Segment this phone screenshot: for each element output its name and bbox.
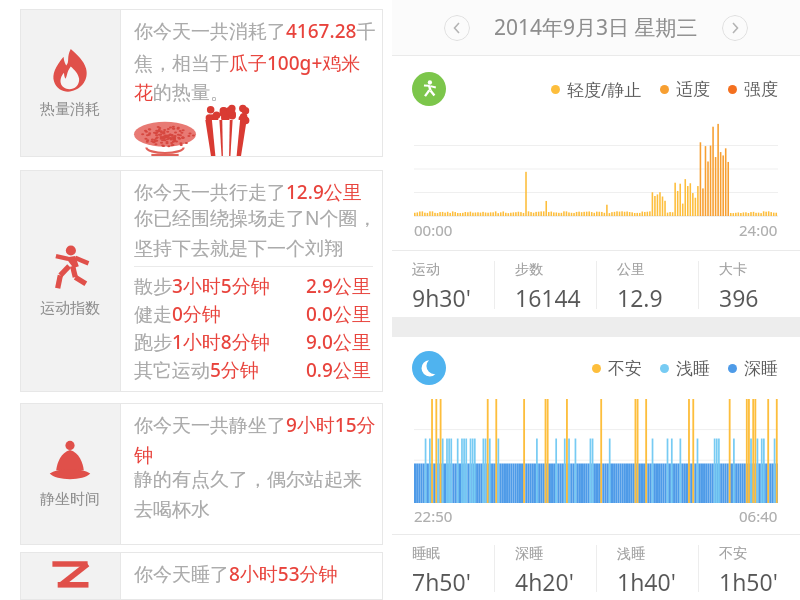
staticText: 其它运动5分钟 — [134, 357, 259, 383]
staticText: 0.9公里 — [306, 357, 371, 383]
staticText: 你已经围绕操场走了N个圈，坚持下去就是下一个刘翔 — [134, 205, 377, 260]
button[interactable]: 静坐时间 — [20, 403, 383, 545]
button[interactable]: 不安 — [719, 545, 800, 592]
staticText: 2.9公里 — [306, 273, 371, 299]
staticText: 公里 — [617, 261, 645, 279]
staticText: 适度 — [676, 79, 710, 100]
staticText: 16144 — [515, 282, 581, 309]
staticText: 散步3小时5分钟 — [134, 273, 270, 299]
staticText: 9.0公里 — [306, 329, 371, 355]
staticText: 浅睡 — [617, 545, 645, 563]
button[interactable]: 运动 — [412, 261, 494, 309]
staticText: 你今天一共静坐了9小时15分钟 — [134, 412, 377, 468]
button[interactable]: 热量消耗 — [20, 9, 383, 157]
staticText: 运动指数 — [40, 299, 100, 318]
button[interactable]: 浅睡 — [617, 545, 698, 592]
staticText: 大卡 — [719, 261, 747, 279]
staticText: 热量消耗 — [40, 100, 100, 119]
staticText: 运动 — [412, 261, 440, 279]
staticText: 不安 — [719, 545, 747, 563]
staticText: 你今天一共消耗了4167.28千焦，相当于瓜子100g+鸡米花的热量。 — [134, 18, 377, 105]
button[interactable]: 睡眠时间 — [20, 552, 383, 600]
staticText: 7h50' — [412, 566, 471, 592]
staticText: 步数 — [515, 261, 543, 279]
staticText: 健走0分钟 — [134, 301, 221, 327]
button[interactable]: 睡眠 — [412, 545, 494, 592]
staticText: 24:00 — [739, 220, 778, 240]
other: 运动指数 — [48, 245, 92, 291]
staticText: 4h20' — [515, 566, 574, 592]
staticText: 06:40 — [739, 506, 778, 526]
staticText: 浅睡 — [676, 358, 710, 379]
staticText: 深睡 — [515, 545, 543, 563]
staticText: 你今天睡了8小时53分钟 — [134, 561, 338, 587]
staticText: 12.9 — [617, 282, 663, 309]
staticText: 9h30' — [412, 282, 471, 309]
staticText: 2014年9月3日 星期三 — [494, 13, 698, 42]
staticText: 不安 — [608, 358, 642, 379]
staticText: 396 — [719, 282, 759, 309]
staticText: 1h40' — [617, 566, 676, 592]
staticText: 1h50' — [719, 566, 778, 592]
staticText: 静的有点久了，偶尔站起来去喝杯水 — [134, 468, 377, 522]
staticText: 静坐时间 — [40, 490, 100, 509]
button[interactable]: 下一天 — [722, 15, 748, 41]
button[interactable]: 大卡 — [719, 261, 800, 309]
staticText: 22:50 — [414, 506, 453, 526]
staticText: 轻度/静止 — [567, 78, 642, 101]
button[interactable]: 深睡 — [515, 545, 596, 592]
staticText: 强度 — [744, 79, 778, 100]
other: 静坐时间 — [47, 440, 93, 482]
staticText: 深睡 — [744, 358, 778, 379]
other: 热量消耗 — [51, 48, 89, 92]
button[interactable]: 前一天 — [444, 15, 470, 41]
other: 睡眠时间 — [48, 552, 92, 592]
staticText: 跑步1小时8分钟 — [134, 329, 270, 355]
staticText: 0.0公里 — [306, 301, 371, 327]
staticText: 00:00 — [414, 220, 453, 240]
staticText: 你今天一共行走了12.9公里 — [134, 179, 362, 205]
button[interactable]: 运动指数 — [20, 170, 383, 392]
staticText: 睡眠 — [412, 545, 440, 563]
button[interactable]: 步数 — [515, 261, 596, 309]
button[interactable]: 公里 — [617, 261, 698, 309]
